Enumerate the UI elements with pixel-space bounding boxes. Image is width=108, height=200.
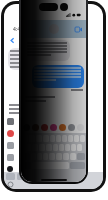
button[interactable] [36,135,42,142]
button[interactable]: Delete [77,153,85,160]
button[interactable] [49,153,55,160]
button[interactable] [63,153,69,160]
button[interactable] [71,144,76,151]
button[interactable] [50,135,55,142]
button[interactable] [62,135,67,142]
button[interactable]: FaceTime video call [74,25,82,33]
button[interactable] [39,144,45,151]
staticText: 4:46 [13,26,23,33]
button[interactable] [32,144,38,151]
button[interactable]: Space [32,162,69,169]
button[interactable] [77,144,82,151]
button[interactable] [46,144,52,151]
button[interactable] [74,135,79,142]
button[interactable]: App [59,124,66,131]
button[interactable]: Return [70,162,85,169]
button[interactable] [53,144,58,151]
button[interactable]: Back [8,36,16,44]
button[interactable] [43,135,49,142]
button[interactable] [80,135,85,142]
button[interactable] [43,153,48,160]
button[interactable] [70,153,76,160]
button[interactable] [68,135,73,142]
button[interactable] [37,153,42,160]
button[interactable] [59,144,64,151]
button[interactable]: App [77,124,84,131]
button[interactable]: App [50,124,57,131]
button[interactable] [56,153,62,160]
button[interactable]: App [41,124,48,131]
button[interactable] [56,135,61,142]
button[interactable] [65,144,70,151]
button[interactable]: App [68,124,75,131]
button[interactable]: App [32,124,39,131]
